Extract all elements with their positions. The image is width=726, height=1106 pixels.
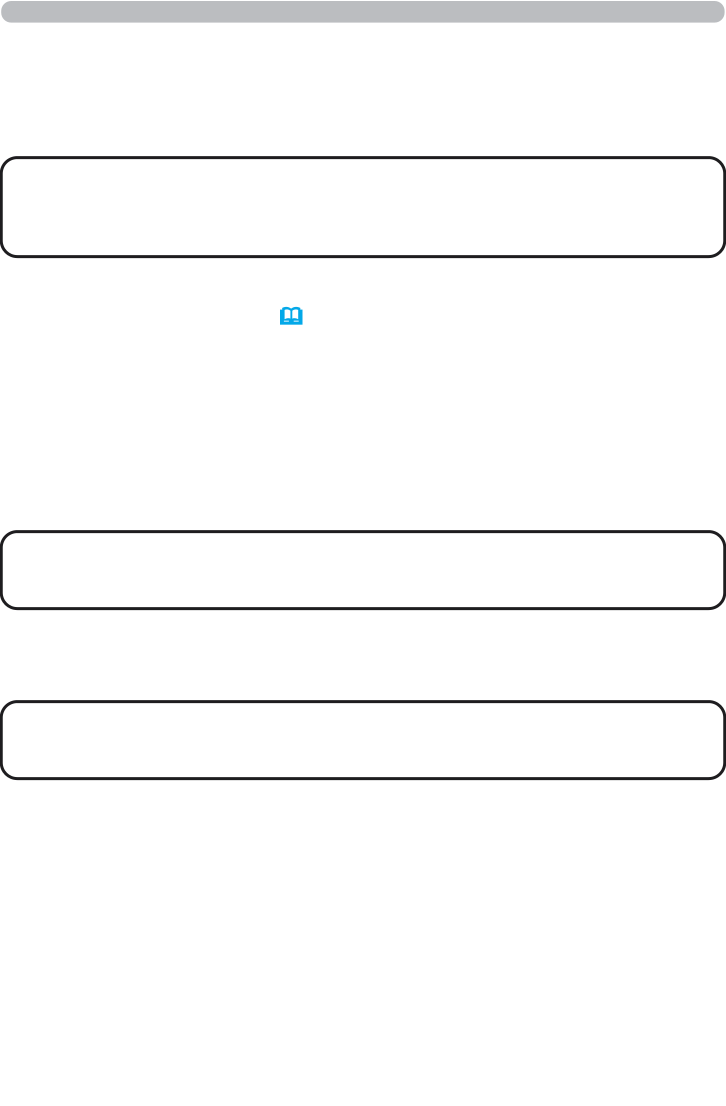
button[interactable]: Content field [1, 702, 725, 779]
button[interactable]: Content field [1, 532, 725, 609]
button[interactable]: Content field [1, 158, 725, 257]
